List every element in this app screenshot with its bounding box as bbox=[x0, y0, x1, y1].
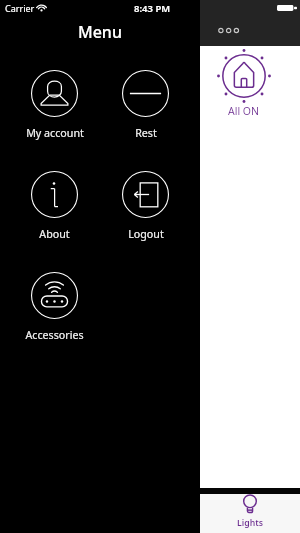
staticText: Lights bbox=[237, 517, 263, 529]
button[interactable]: My account bbox=[9, 70, 100, 171]
button[interactable]: Lights bbox=[200, 494, 300, 533]
staticText: My account bbox=[26, 126, 84, 141]
button[interactable]: Logout bbox=[100, 171, 191, 272]
staticText: Logout bbox=[128, 227, 164, 242]
button[interactable]: Rest bbox=[100, 70, 191, 171]
button[interactable]: About bbox=[9, 171, 100, 272]
staticText: Accessories bbox=[25, 328, 84, 343]
staticText: All ON bbox=[228, 104, 260, 118]
staticText: 8:43 PM bbox=[134, 2, 171, 15]
staticText: Rest bbox=[135, 126, 157, 141]
staticText: Carrier bbox=[5, 2, 35, 14]
button[interactable]: Accessories bbox=[9, 272, 100, 373]
button[interactable]: All ON bbox=[208, 49, 280, 118]
staticText: Menu bbox=[78, 21, 122, 41]
staticText: About bbox=[39, 227, 70, 242]
button[interactable]: More options bbox=[214, 20, 242, 41]
